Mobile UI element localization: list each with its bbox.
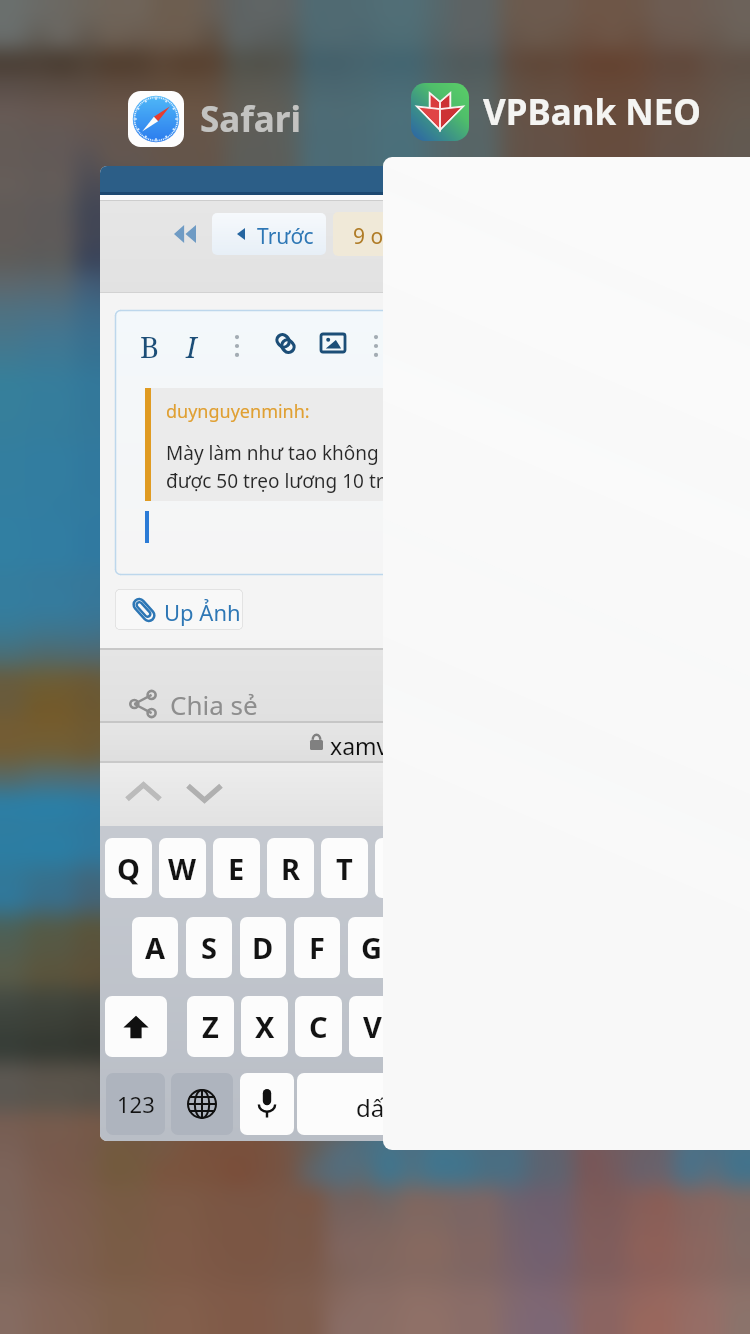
button[interactable]: Safari [128, 87, 301, 151]
staticText: được 50 trẹo lương 10 tr [166, 468, 384, 494]
staticText: I [186, 327, 197, 366]
button[interactable]: Up Ảnh [115, 589, 243, 630]
button[interactable]: X [241, 996, 288, 1057]
staticText: R [281, 849, 301, 888]
staticText: A [145, 928, 166, 967]
button[interactable]: Trước [212, 213, 326, 255]
staticText: xamv [330, 730, 389, 761]
button[interactable] [100, 649, 400, 721]
button[interactable]: First page [100, 166, 400, 1141]
button[interactable]: Shift [105, 996, 167, 1057]
staticText: Chia sẻ [170, 687, 258, 722]
staticText: W [168, 849, 197, 888]
button[interactable]: Next field [178, 768, 231, 818]
button[interactable]: Previous field [117, 768, 170, 818]
staticText: duynguyenminh: [166, 399, 310, 424]
staticText: dấu [356, 1091, 400, 1124]
button[interactable]: 123 [106, 1073, 165, 1135]
staticText: Safari [200, 95, 301, 143]
staticText: 9 of 12 [353, 222, 400, 251]
button[interactable]: W [159, 838, 206, 898]
button[interactable]: G [348, 917, 394, 978]
staticText: G [361, 928, 382, 967]
button[interactable]: A [132, 917, 178, 978]
staticText: Up Ảnh [164, 597, 241, 627]
staticText: E [228, 849, 245, 888]
button[interactable]: R [267, 838, 314, 898]
staticText: F [309, 928, 325, 967]
button[interactable]: Y [375, 838, 400, 898]
button[interactable]: Z [187, 996, 234, 1057]
button[interactable]: Switch keyboard language [171, 1073, 233, 1135]
staticText: 123 [117, 1089, 155, 1119]
button[interactable]: VPBank NEO [411, 79, 702, 145]
button[interactable]: T [321, 838, 368, 898]
button[interactable]: C [295, 996, 342, 1057]
button[interactable]: V [349, 996, 396, 1057]
staticText: S [201, 928, 217, 967]
staticText: Trước [257, 222, 314, 251]
staticText: T [336, 849, 353, 888]
button[interactable]: Dictate [240, 1073, 294, 1135]
button[interactable]: E [213, 838, 260, 898]
button[interactable] [100, 722, 400, 762]
staticText: VPBank NEO [483, 88, 702, 136]
staticText: Mày làm như tao không b [166, 440, 396, 466]
button[interactable]: Q [105, 838, 152, 898]
staticText: Q [117, 849, 140, 888]
staticText: X [255, 1007, 275, 1046]
staticText: V [363, 1007, 382, 1046]
button[interactable]: Space [297, 1073, 400, 1135]
button[interactable]: F [294, 917, 340, 978]
staticText: B [140, 327, 159, 366]
button[interactable]: S [186, 917, 232, 978]
button[interactable]: D [240, 917, 286, 978]
button[interactable]: First page [166, 216, 204, 252]
button[interactable]: 9 of 12 [333, 212, 400, 256]
staticText: C [309, 1007, 328, 1046]
staticText: D [252, 928, 274, 967]
staticText: Z [202, 1007, 219, 1046]
